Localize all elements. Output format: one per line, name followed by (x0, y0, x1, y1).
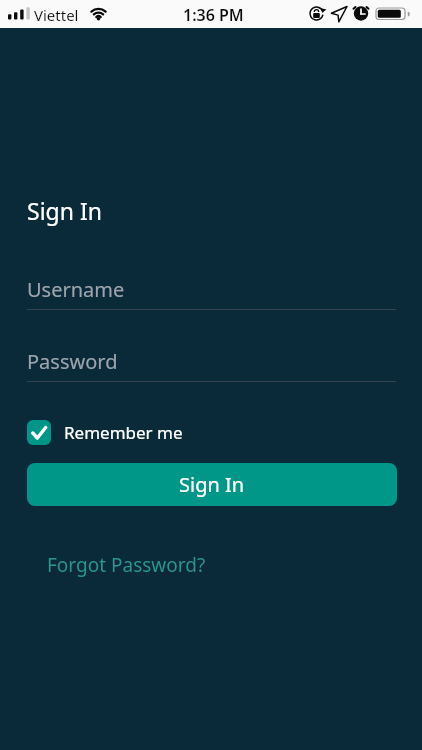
staticText: Forgot Password? (47, 552, 206, 578)
staticText: Remember me (64, 421, 183, 444)
staticText: Password (27, 348, 118, 375)
button[interactable]: Forgot Password? (47, 552, 206, 578)
button[interactable]: Remember me (27, 420, 183, 445)
staticText: Username (27, 276, 125, 303)
staticText: Sign In (27, 195, 102, 226)
staticText: 1:36 PM (183, 4, 244, 26)
staticText: Viettel (34, 5, 79, 25)
staticText: Sign In (179, 471, 245, 498)
button[interactable]: Username (27, 276, 396, 310)
button[interactable]: Password (27, 348, 396, 382)
button[interactable]: Sign In (27, 463, 397, 506)
